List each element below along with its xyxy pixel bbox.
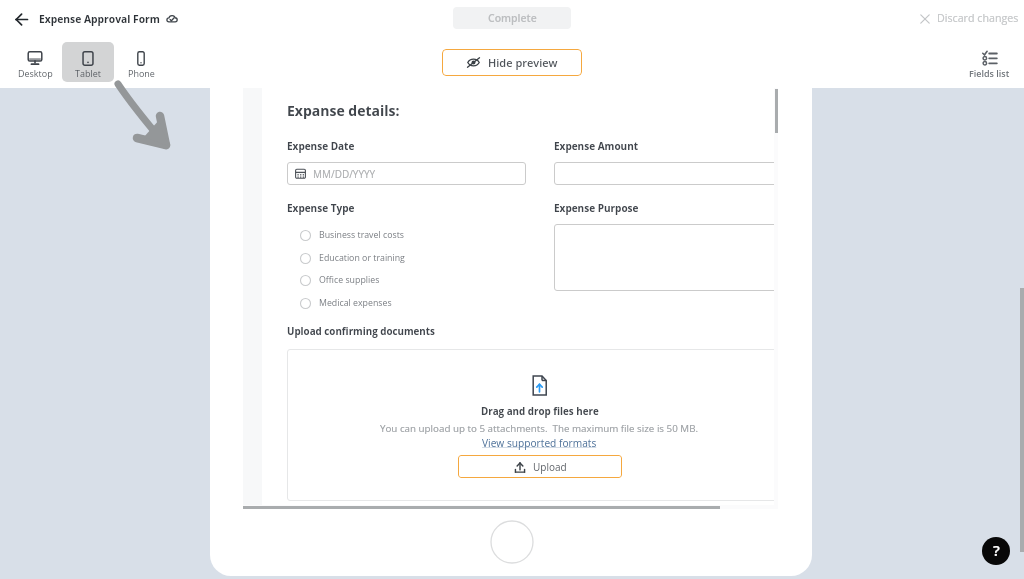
staticText: Fields list <box>969 67 1010 79</box>
button[interactable]: Fields list <box>963 51 1015 79</box>
staticText: Complete <box>488 11 537 25</box>
button[interactable]: MM/DD/YYYY <box>287 162 526 185</box>
button[interactable]: View supported formats <box>482 436 597 450</box>
button[interactable] <box>554 162 776 185</box>
button[interactable]: Saved to cloud <box>166 13 178 24</box>
staticText: Discard changes <box>937 11 1019 26</box>
button[interactable]: Discard changes <box>920 11 1019 26</box>
staticText: Upload confirming documents <box>287 325 435 338</box>
button[interactable]: Phone <box>115 42 167 82</box>
staticText: Medical expenses <box>319 297 392 309</box>
staticText: Phone <box>128 67 155 79</box>
button[interactable]: Back <box>15 13 28 26</box>
staticText: Education or training <box>319 252 405 264</box>
button[interactable] <box>554 224 776 291</box>
staticText: Hide preview <box>488 55 558 70</box>
button[interactable]: Desktop <box>9 42 61 82</box>
button[interactable]: Business travel costs <box>300 226 460 244</box>
button[interactable]: Education or training <box>300 249 460 267</box>
staticText: ? <box>993 540 1000 560</box>
staticText: Expanse details: <box>287 101 400 120</box>
staticText: Business travel costs <box>319 229 404 241</box>
staticText: Office supplies <box>319 274 380 286</box>
button[interactable]: Hide preview <box>442 49 582 76</box>
button[interactable]: Upload <box>458 455 622 478</box>
staticText: Expense Type <box>287 201 355 215</box>
staticText: Upload <box>533 460 567 474</box>
staticText: Expense Approval Form <box>39 12 160 26</box>
staticText: MM/DD/YYYY <box>313 167 376 181</box>
staticText: Expense Date <box>287 139 355 153</box>
staticText: Desktop <box>18 67 53 79</box>
staticText: Expense Amount <box>554 139 639 153</box>
staticText: You can upload up to 5 attachments. The … <box>380 422 699 435</box>
button[interactable]: Medical expenses <box>300 294 460 312</box>
staticText: Expense Purpose <box>554 201 639 215</box>
staticText: Tablet <box>75 67 101 79</box>
button[interactable]: Complete <box>453 7 571 29</box>
staticText: Drag and drop files here <box>481 405 599 418</box>
button[interactable]: Help <box>982 537 1010 565</box>
button[interactable]: Office supplies <box>300 271 460 289</box>
button[interactable]: Tablet <box>62 42 114 82</box>
